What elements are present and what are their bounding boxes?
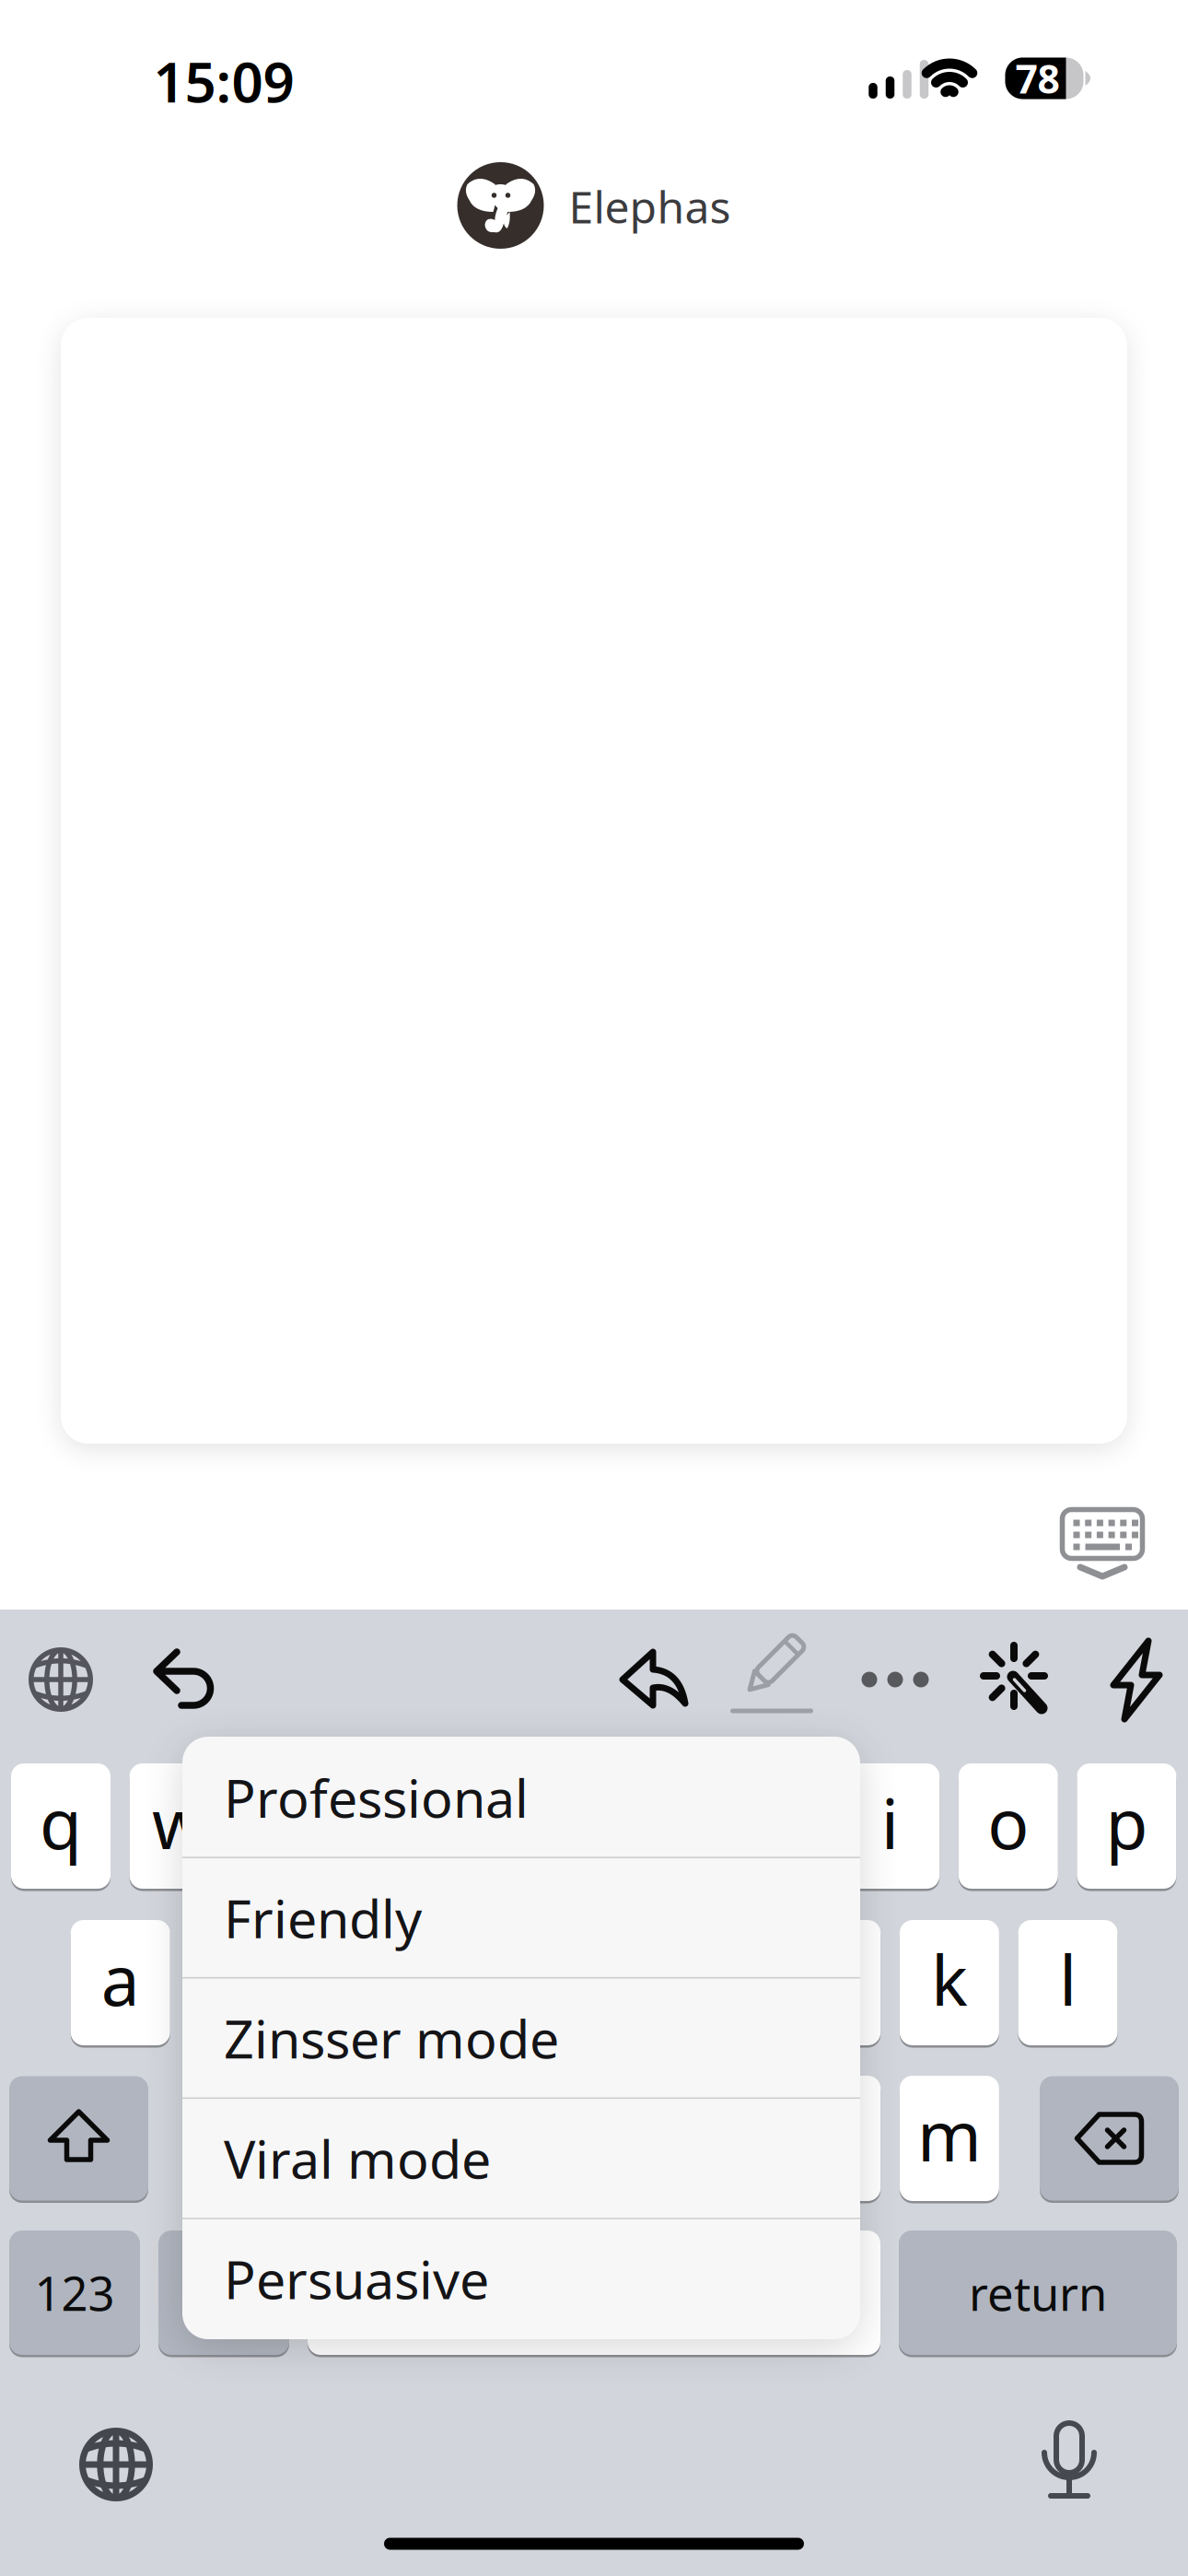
button[interactable]: g bbox=[544, 1920, 644, 2045]
staticText: return bbox=[969, 2262, 1107, 2324]
staticText: h bbox=[691, 1933, 734, 2025]
button[interactable]: x bbox=[307, 2076, 407, 2201]
staticText: z bbox=[223, 2089, 255, 2180]
button[interactable]: w bbox=[129, 1763, 229, 1889]
button[interactable]: j bbox=[781, 1920, 881, 2045]
staticText: p bbox=[1105, 1777, 1148, 1868]
staticText: k bbox=[931, 1933, 968, 2025]
staticText: c bbox=[459, 2089, 492, 2180]
staticText: Viral mode bbox=[224, 2123, 491, 2193]
staticText: s bbox=[222, 1933, 255, 2025]
staticText: q bbox=[40, 1777, 82, 1868]
button[interactable]: m bbox=[900, 2076, 999, 2201]
button[interactable]: b bbox=[663, 2076, 762, 2201]
staticText: Persuasive bbox=[224, 2243, 489, 2314]
staticText: n bbox=[810, 2089, 852, 2180]
staticText: r bbox=[402, 1777, 430, 1868]
button[interactable]: e bbox=[248, 1763, 347, 1889]
staticText: o bbox=[988, 1777, 1029, 1868]
staticText: a bbox=[101, 1933, 140, 2025]
staticText: u bbox=[750, 1777, 793, 1868]
button[interactable]: delete bbox=[1040, 2076, 1179, 2201]
button[interactable]: Dictation bbox=[1044, 2423, 1094, 2499]
button[interactable]: f bbox=[426, 1920, 525, 2045]
staticText: 78 bbox=[1015, 52, 1060, 104]
button[interactable]: Quick Actions bbox=[1109, 1640, 1162, 1721]
button[interactable]: More bbox=[858, 1659, 932, 1700]
button[interactable]: y bbox=[603, 1763, 703, 1889]
button[interactable]: space bbox=[308, 2231, 880, 2355]
button[interactable]: d bbox=[307, 1920, 407, 2045]
staticText: y bbox=[635, 1777, 670, 1868]
button[interactable]: Undo bbox=[146, 1642, 219, 1715]
button[interactable]: Zinsser mode bbox=[182, 1979, 860, 2097]
staticText: Professional bbox=[224, 1762, 529, 1832]
staticText: b bbox=[691, 2089, 734, 2180]
button[interactable]: r bbox=[366, 1763, 466, 1889]
button[interactable]: z bbox=[189, 2076, 289, 2201]
button[interactable]: l bbox=[1018, 1920, 1118, 2045]
button[interactable]: k bbox=[900, 1920, 999, 2045]
button[interactable]: Edit bbox=[728, 1636, 815, 1717]
button[interactable]: Dismiss Keyboard bbox=[1056, 1509, 1148, 1587]
button[interactable]: shift bbox=[9, 2076, 148, 2201]
staticText: w bbox=[152, 1777, 206, 1868]
button[interactable]: emoji bbox=[158, 2231, 289, 2355]
button[interactable]: q bbox=[11, 1763, 111, 1889]
button[interactable]: o bbox=[959, 1763, 1058, 1889]
staticText: g bbox=[573, 1933, 615, 2025]
staticText: l bbox=[1059, 1933, 1077, 2025]
staticText: 123 bbox=[35, 2262, 115, 2324]
staticText: d bbox=[336, 1933, 378, 2025]
staticText: m bbox=[917, 2089, 982, 2180]
button[interactable]: Persuasive bbox=[182, 2219, 860, 2338]
staticText: Elephas bbox=[569, 177, 731, 236]
staticText: i bbox=[881, 1777, 899, 1868]
button[interactable]: c bbox=[426, 2076, 525, 2201]
button[interactable]: t bbox=[485, 1763, 584, 1889]
button[interactable]: a bbox=[71, 1920, 170, 2045]
button[interactable]: p bbox=[1077, 1763, 1176, 1889]
button[interactable]: Next Keyboard bbox=[79, 2428, 153, 2501]
button[interactable]: n bbox=[781, 2076, 881, 2201]
button[interactable]: Friendly bbox=[182, 1858, 860, 1977]
staticText: j bbox=[822, 1933, 840, 2025]
button[interactable]: Switch Keyboard bbox=[29, 1647, 93, 1712]
button[interactable]: Magic bbox=[984, 1644, 1050, 1712]
staticText: Zinsser mode bbox=[224, 2003, 559, 2073]
staticText: x bbox=[339, 2089, 375, 2180]
staticText: t bbox=[522, 1777, 547, 1868]
button[interactable]: Professional bbox=[182, 1738, 860, 1857]
button[interactable]: h bbox=[663, 1920, 762, 2045]
staticText: v bbox=[577, 2089, 612, 2180]
staticText: 15:09 bbox=[153, 44, 294, 118]
staticText: e bbox=[278, 1777, 317, 1868]
staticText: Friendly bbox=[224, 1883, 422, 1953]
button[interactable]: 123 bbox=[9, 2231, 140, 2355]
button[interactable]: v bbox=[544, 2076, 644, 2201]
button[interactable]: s bbox=[189, 1920, 289, 2045]
button[interactable]: u bbox=[722, 1763, 821, 1889]
button[interactable]: Reply bbox=[613, 1642, 696, 1715]
button[interactable]: Viral mode bbox=[182, 2099, 860, 2218]
staticText: f bbox=[464, 1933, 488, 2025]
button[interactable]: i bbox=[840, 1763, 940, 1889]
button[interactable]: return bbox=[899, 2231, 1177, 2355]
